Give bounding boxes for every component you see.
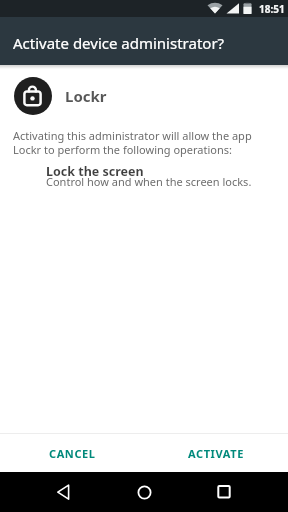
staticText: Activating this administrator will allow…	[13, 128, 252, 157]
button[interactable]: CANCEL	[0, 434, 144, 472]
staticText: Activate device administrator?	[13, 33, 225, 53]
staticText: 18:51	[259, 2, 285, 16]
button[interactable]	[124, 472, 164, 512]
staticText: Lock the screen	[46, 163, 144, 180]
staticText: Control how and when the screen locks.	[46, 174, 252, 189]
button[interactable]: Lockr	[14, 77, 107, 115]
staticText: CANCEL	[49, 446, 96, 461]
button[interactable]	[44, 472, 84, 512]
staticText: Lockr	[65, 86, 107, 106]
staticText: ACTIVATE	[188, 446, 244, 461]
button[interactable]	[204, 472, 244, 512]
button[interactable]: ACTIVATE	[144, 434, 288, 472]
